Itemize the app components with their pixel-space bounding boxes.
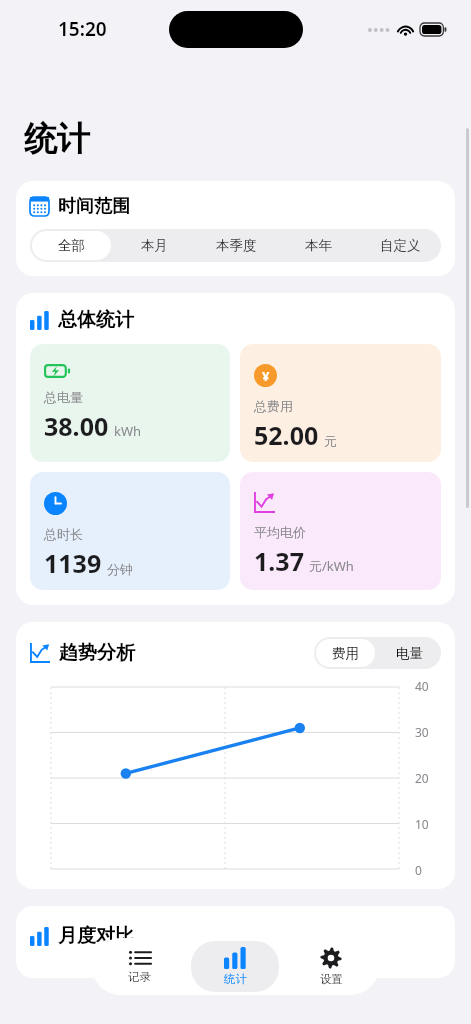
button[interactable]: 本年 bbox=[279, 231, 357, 260]
staticText: ¥ bbox=[262, 367, 270, 385]
staticText: 费用 bbox=[332, 645, 359, 662]
staticText: 电量 bbox=[396, 645, 423, 662]
staticText: 统计 bbox=[24, 118, 90, 160]
staticText: 40 bbox=[415, 678, 429, 694]
staticText: 全部 bbox=[58, 237, 85, 254]
button[interactable]: 平均电价 bbox=[240, 472, 441, 590]
staticText: 30 bbox=[415, 724, 429, 740]
staticText: kWh bbox=[114, 422, 142, 440]
button[interactable]: 全部 bbox=[32, 231, 111, 260]
staticText: 统计 bbox=[224, 972, 247, 986]
staticText: 总费用 bbox=[254, 398, 293, 414]
staticText: 本月 bbox=[141, 237, 168, 254]
staticText: 自定义 bbox=[380, 237, 421, 254]
staticText: 20 bbox=[415, 770, 429, 786]
staticText: 分钟 bbox=[107, 561, 133, 577]
staticText: 15:20 bbox=[58, 16, 107, 42]
staticText: 本季度 bbox=[216, 237, 257, 254]
staticText: 设置 bbox=[320, 972, 343, 986]
button[interactable]: 总时长 bbox=[30, 472, 230, 590]
staticText: 平均电价 bbox=[254, 524, 306, 540]
staticText: 52.00 bbox=[254, 418, 319, 452]
button[interactable]: 费用 bbox=[316, 639, 375, 667]
staticText: 时间范围 bbox=[58, 195, 130, 218]
button[interactable]: 设置 bbox=[287, 941, 375, 992]
staticText: 记录 bbox=[128, 970, 151, 984]
button[interactable]: 记录 bbox=[96, 941, 183, 992]
staticText: 1139 bbox=[44, 546, 102, 580]
staticText: 元 bbox=[324, 433, 337, 449]
staticText: 38.00 bbox=[44, 409, 109, 443]
button[interactable]: 本季度 bbox=[197, 231, 275, 260]
staticText: 1.37 bbox=[254, 544, 304, 578]
staticText: 10 bbox=[415, 816, 429, 832]
button[interactable]: 自定义 bbox=[361, 231, 439, 260]
staticText: 总电量 bbox=[44, 389, 83, 405]
button[interactable]: ¥ bbox=[240, 344, 441, 462]
staticText: 0 bbox=[415, 862, 422, 878]
staticText: 趋势分析 bbox=[59, 641, 135, 665]
button[interactable]: 电量 bbox=[379, 639, 439, 667]
staticText: 总时长 bbox=[44, 526, 83, 542]
staticText: 本年 bbox=[305, 237, 332, 254]
button[interactable]: 统计 bbox=[191, 941, 279, 992]
button[interactable]: 总电量 bbox=[30, 344, 230, 462]
staticText: 元/kWh bbox=[309, 557, 354, 575]
staticText: 总体统计 bbox=[58, 308, 134, 332]
button[interactable]: 本月 bbox=[115, 231, 193, 260]
staticText: 月度对比 bbox=[58, 924, 134, 948]
